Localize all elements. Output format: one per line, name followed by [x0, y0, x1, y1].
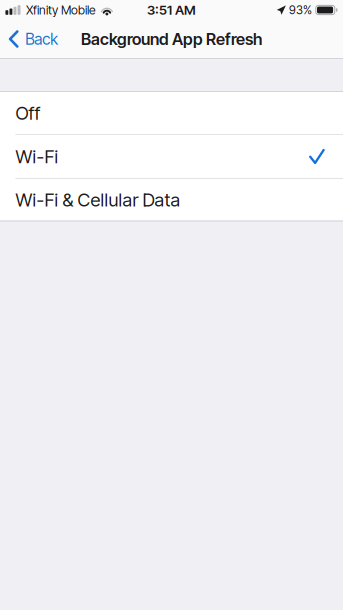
button[interactable]: Wi-Fi & Cellular Data	[0, 179, 343, 220]
staticText: Back	[25, 29, 58, 48]
button[interactable]: Off	[0, 92, 343, 135]
staticText: 3:51 AM	[147, 2, 196, 18]
staticText: Off	[15, 102, 40, 124]
staticText: 93%	[289, 3, 312, 17]
staticText: Wi-Fi & Cellular Data	[15, 189, 180, 211]
staticText: Wi-Fi	[15, 145, 58, 168]
button[interactable]: Back	[0, 20, 68, 58]
staticText: Background App Refresh	[81, 29, 262, 49]
staticText: Xfinity Mobile	[26, 3, 96, 17]
button[interactable]: Wi-Fi	[0, 135, 343, 179]
